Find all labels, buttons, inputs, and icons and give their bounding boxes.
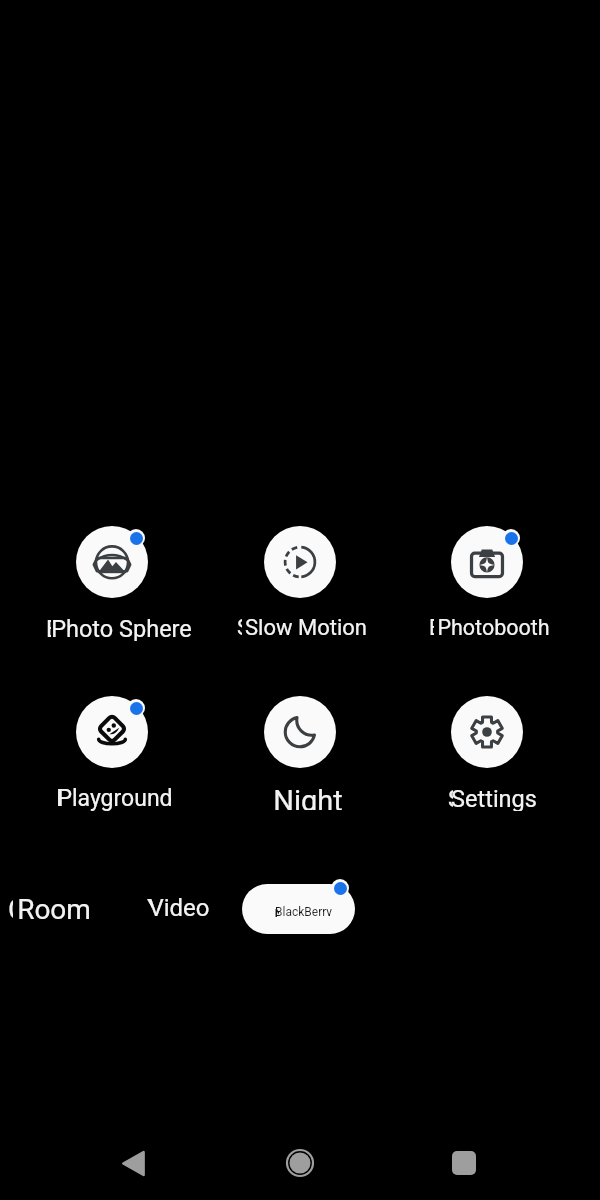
staticText: Photobooth <box>437 615 550 640</box>
staticText: E <box>429 615 434 640</box>
button[interactable]: Night <box>178 784 438 810</box>
button[interactable]: Room <box>0 893 184 919</box>
button[interactable]: Settings <box>364 785 600 811</box>
button[interactable]: Photobooth <box>363 615 600 641</box>
staticText: I <box>56 785 61 811</box>
button[interactable]: Camera mode <box>451 526 523 598</box>
button[interactable]: Back <box>104 1133 164 1193</box>
button[interactable]: Camera mode <box>264 696 336 768</box>
button[interactable]: BlackBerry <box>242 884 355 934</box>
button[interactable]: Camera mode <box>451 696 523 768</box>
staticText: Video <box>148 894 210 920</box>
button[interactable]: Photo Sphere <box>0 615 251 641</box>
staticText: N <box>274 905 279 917</box>
staticText: S <box>448 785 453 811</box>
button[interactable]: Video <box>49 894 309 920</box>
staticText: Room <box>17 893 91 919</box>
button[interactable]: Playground <box>0 785 245 811</box>
button[interactable]: Camera mode <box>76 696 148 768</box>
button[interactable]: Recent apps <box>434 1133 494 1193</box>
staticText: BlackBerry <box>275 905 333 916</box>
staticText: Photo Sphere <box>51 615 192 641</box>
button[interactable]: Home <box>270 1133 330 1193</box>
staticText: Playground <box>57 785 173 811</box>
staticText: Slow Motion <box>245 615 367 641</box>
button[interactable]: Camera mode <box>76 526 148 598</box>
button[interactable]: Slow Motion <box>176 615 436 641</box>
staticText: C <box>8 893 13 919</box>
staticText: E <box>46 615 51 641</box>
staticText: Y <box>147 894 152 920</box>
staticText: S <box>237 615 242 641</box>
staticText: Settings <box>451 785 537 811</box>
staticText: Night <box>273 784 343 810</box>
button[interactable]: Camera mode <box>264 526 336 598</box>
